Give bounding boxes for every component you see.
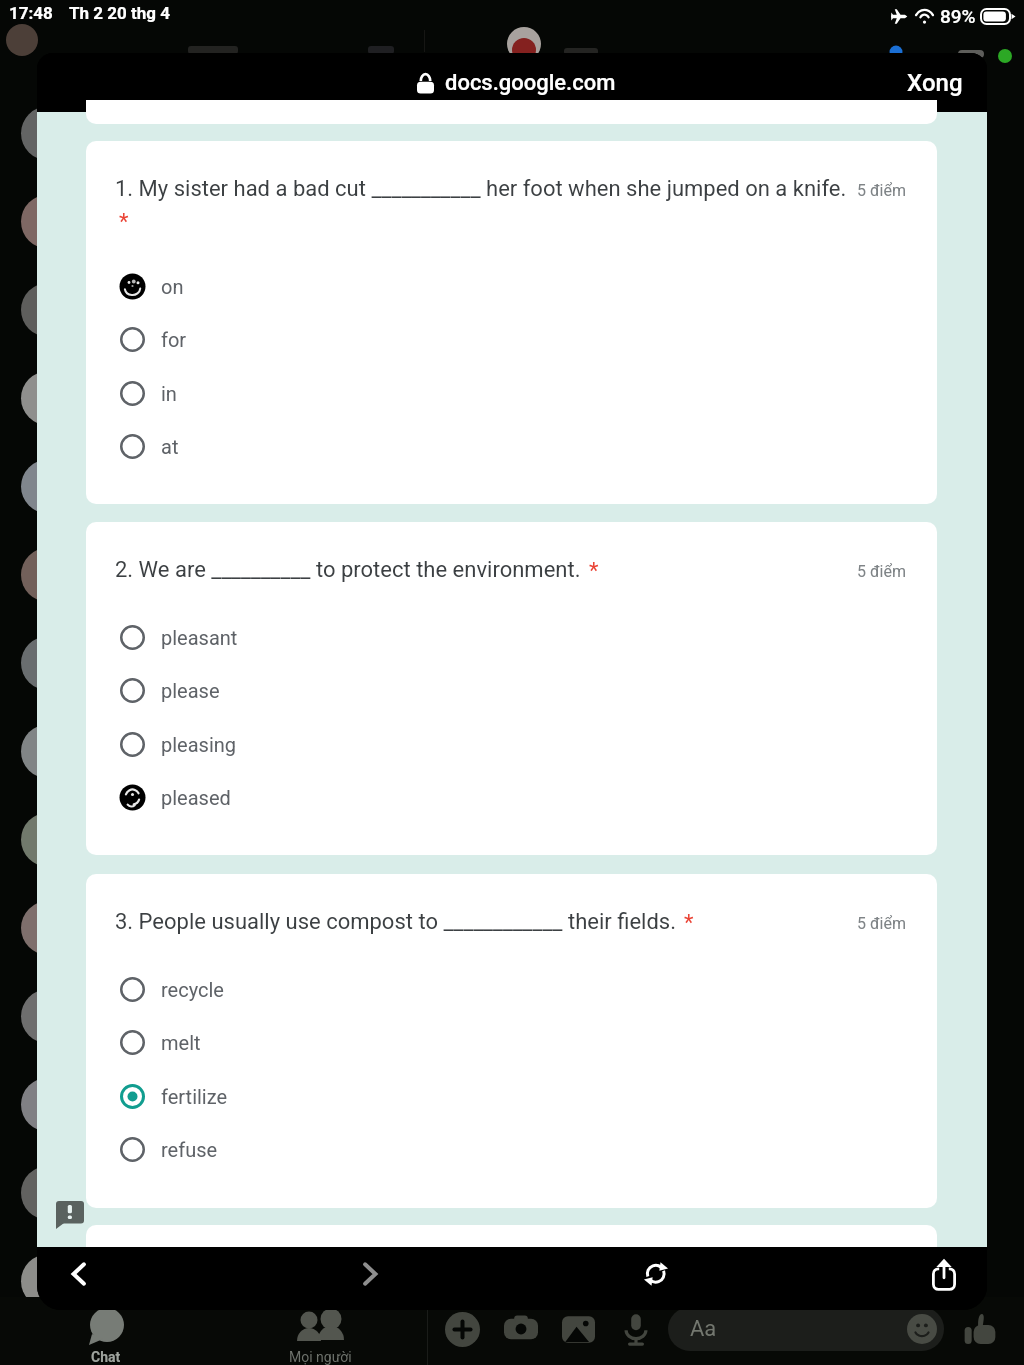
button[interactable]: on xyxy=(104,262,524,310)
button[interactable]: please xyxy=(104,666,524,714)
button[interactable]: Forward xyxy=(346,1250,394,1298)
staticText: Th 2 20 thg 4 xyxy=(69,3,170,23)
staticText: pleased xyxy=(161,786,231,809)
button[interactable]: Gallery xyxy=(552,1304,604,1354)
staticText: in xyxy=(161,382,177,405)
button[interactable]: Aa xyxy=(668,1307,944,1351)
button[interactable]: pleasant xyxy=(104,613,524,661)
staticText: 17:48 xyxy=(9,3,53,23)
button[interactable]: for xyxy=(104,315,524,363)
staticText: 2. We are __________ to protect the envi… xyxy=(115,557,581,583)
staticText: please xyxy=(161,679,220,702)
button[interactable]: Chat xyxy=(58,1308,154,1365)
staticText: 5 điểm xyxy=(857,914,906,933)
staticText: 1. My sister had a bad cut ___________ h… xyxy=(115,176,847,202)
button[interactable]: Add xyxy=(436,1304,488,1354)
button[interactable]: at xyxy=(104,422,524,470)
button[interactable]: in xyxy=(104,369,524,417)
staticText: fertilize xyxy=(161,1085,228,1108)
staticText: 5 điểm xyxy=(857,181,906,200)
staticText: pleasant xyxy=(161,626,238,649)
staticText: 3. People usually use compost to _______… xyxy=(115,909,676,935)
staticText: at xyxy=(161,435,179,458)
staticText: for xyxy=(161,328,187,351)
staticText: 5 điểm xyxy=(857,562,906,581)
button[interactable]: fertilize xyxy=(104,1072,524,1120)
staticText: * xyxy=(119,209,129,235)
button[interactable]: melt xyxy=(104,1018,524,1066)
button[interactable]: recycle xyxy=(104,965,524,1013)
staticText: * xyxy=(589,558,599,584)
staticText: * xyxy=(684,910,694,936)
button[interactable]: Mọi người xyxy=(272,1308,368,1365)
staticText: Aa xyxy=(690,1316,717,1342)
staticText: Xong xyxy=(907,69,963,97)
button[interactable]: Reload page xyxy=(632,1250,680,1298)
button[interactable]: Like xyxy=(954,1304,1006,1354)
staticText: melt xyxy=(161,1031,201,1054)
staticText: recycle xyxy=(161,978,224,1001)
button[interactable]: pleasing xyxy=(104,720,524,768)
button[interactable]: pleased xyxy=(104,773,524,821)
button[interactable]: Camera xyxy=(495,1304,547,1354)
staticText: on xyxy=(161,275,184,298)
button[interactable]: refuse xyxy=(104,1125,524,1173)
staticText: docs.google.com xyxy=(445,70,616,96)
staticText: Mọi người xyxy=(289,1349,352,1365)
staticText: pleasing xyxy=(161,733,237,756)
button[interactable]: Xong xyxy=(883,55,987,111)
button[interactable]: Share xyxy=(920,1250,968,1298)
staticText: refuse xyxy=(161,1138,218,1161)
button[interactable]: Back xyxy=(54,1250,102,1298)
button[interactable]: Voice message xyxy=(610,1304,662,1354)
staticText: Chat xyxy=(91,1349,121,1365)
staticText: 89% xyxy=(940,5,976,27)
